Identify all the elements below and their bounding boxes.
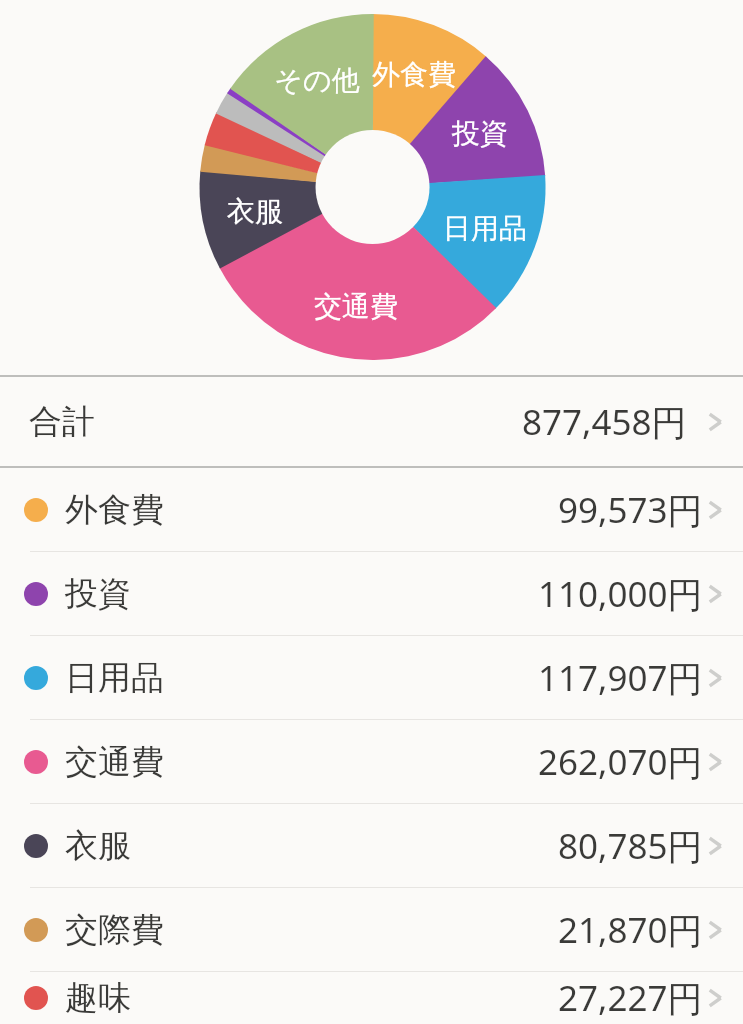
other: Open details xyxy=(703,493,727,527)
staticText: 日用品 xyxy=(65,657,164,699)
button[interactable]: 合計 xyxy=(0,377,743,466)
staticText: 877,458円 xyxy=(522,398,687,446)
button[interactable]: 日用品 xyxy=(0,636,743,719)
button[interactable]: 趣味 xyxy=(0,972,743,1024)
staticText: 21,870円 xyxy=(558,906,703,954)
staticText: 交際費 xyxy=(65,909,164,951)
other: Open details xyxy=(703,913,727,947)
staticText: 衣服 xyxy=(65,825,131,867)
button[interactable]: 衣服 xyxy=(0,804,743,887)
button[interactable]: 投資 xyxy=(0,552,743,635)
staticText: 衣服 xyxy=(227,194,283,229)
other: Open details xyxy=(703,829,727,863)
staticText: 80,785円 xyxy=(558,822,703,870)
other: Open details xyxy=(703,661,727,695)
button[interactable]: 交際費 xyxy=(0,888,743,971)
staticText: その他 xyxy=(274,63,360,98)
other: Open details xyxy=(703,577,727,611)
staticText: 日用品 xyxy=(443,211,527,246)
staticText: 外食費 xyxy=(372,57,456,92)
staticText: 趣味 xyxy=(65,977,131,1019)
other: Open details xyxy=(703,981,727,1015)
staticText: 外食費 xyxy=(65,489,164,531)
button[interactable]: 外食費 xyxy=(0,468,743,551)
staticText: 合計 xyxy=(29,401,95,443)
staticText: 117,907円 xyxy=(538,654,703,702)
button[interactable]: 交通費 xyxy=(0,720,743,803)
staticText: 投資 xyxy=(452,116,508,151)
other: Open details xyxy=(703,745,727,779)
staticText: 262,070円 xyxy=(538,738,703,786)
staticText: 投資 xyxy=(65,573,131,615)
other: Open details xyxy=(703,405,727,439)
staticText: 110,000円 xyxy=(538,570,703,618)
staticText: 交通費 xyxy=(65,741,164,783)
staticText: 交通費 xyxy=(314,289,398,324)
staticText: 99,573円 xyxy=(558,486,703,534)
staticText: 27,227円 xyxy=(558,974,703,1022)
